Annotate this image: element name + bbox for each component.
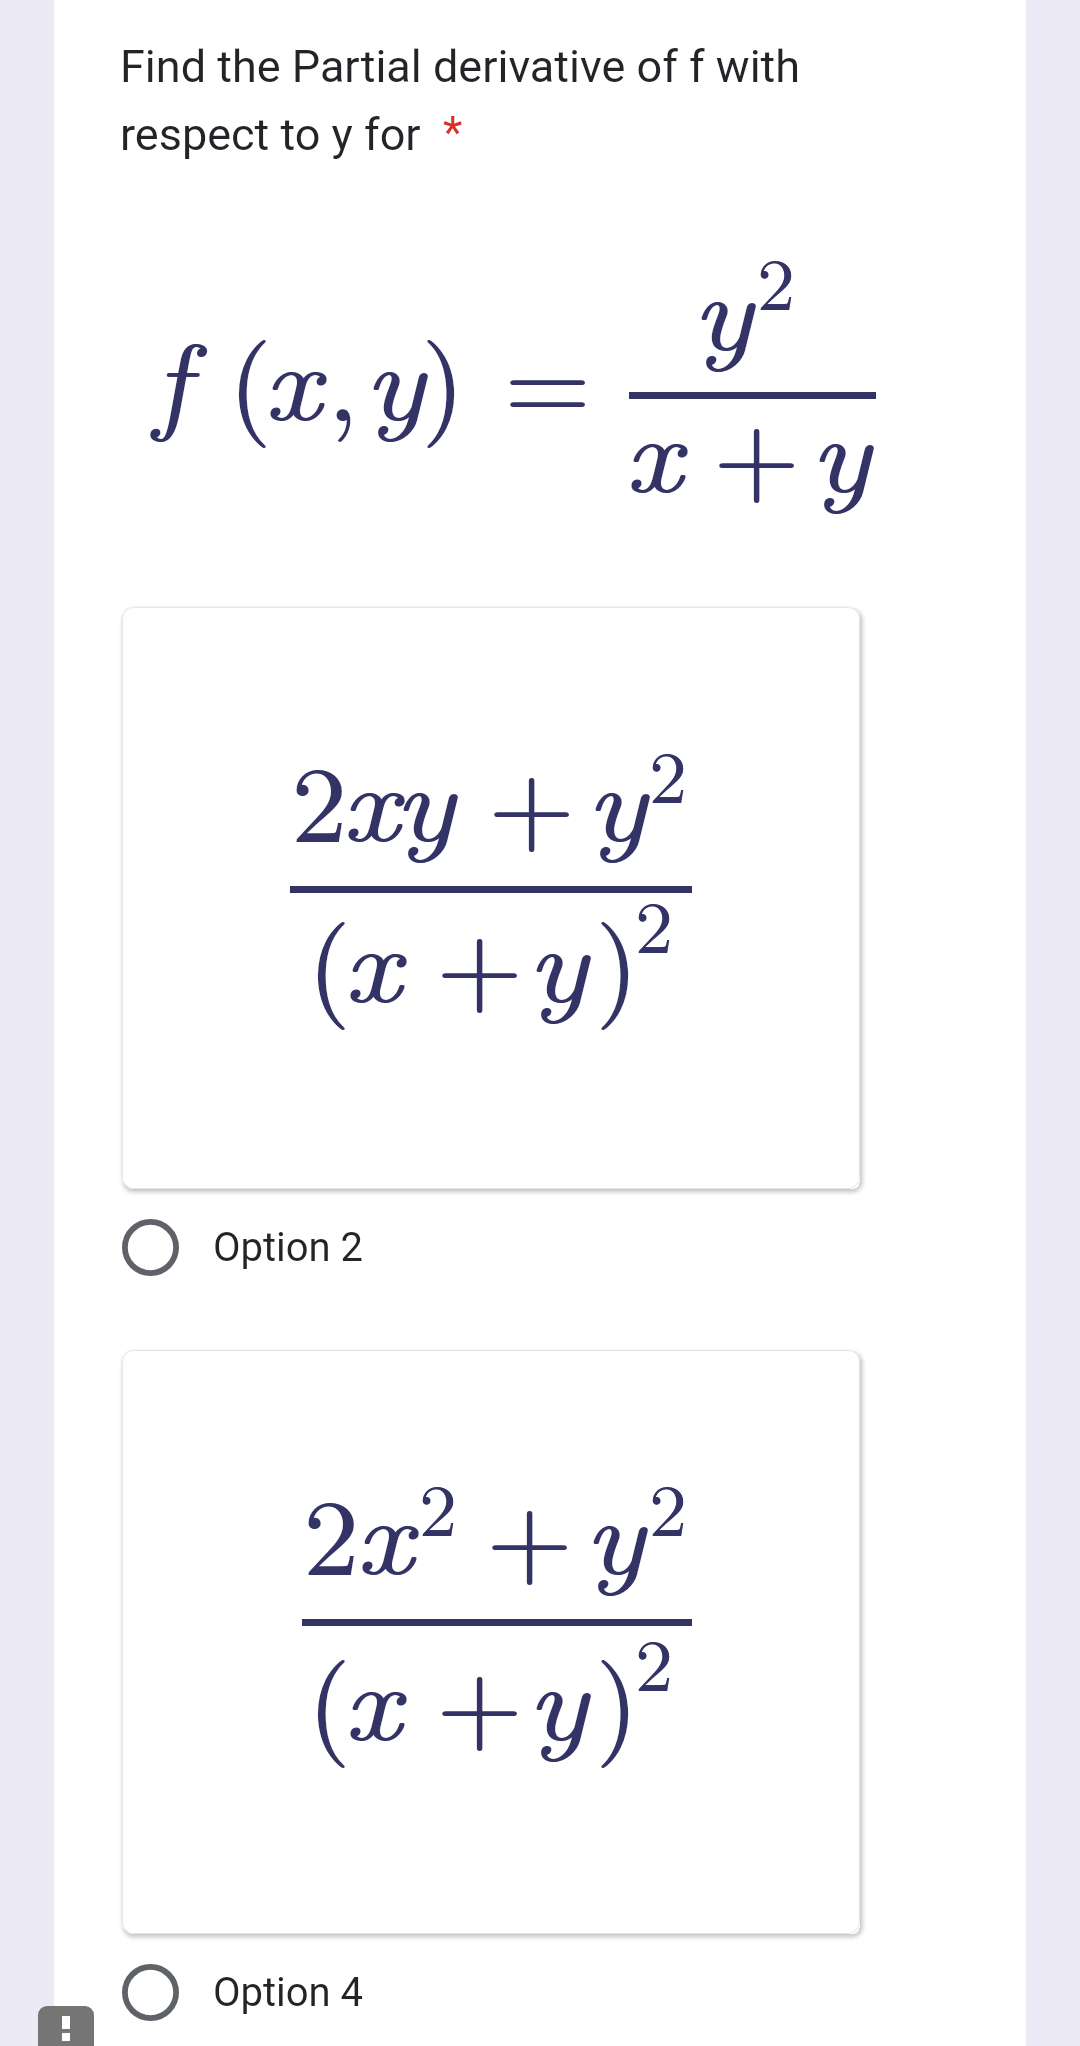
staticText: y [395, 720, 457, 873]
staticText: ) [421, 299, 465, 452]
staticText: x [342, 720, 401, 873]
staticText: ( [308, 1619, 352, 1772]
staticText: y [693, 229, 755, 382]
staticText: 2 [649, 720, 688, 825]
staticText: = [505, 299, 592, 452]
staticText: y [586, 720, 648, 873]
button[interactable]: Warning [38, 2006, 94, 2046]
staticText: + [713, 371, 800, 524]
staticText: Option 4 [213, 1969, 364, 2016]
staticText: x [344, 881, 403, 1034]
staticText: ( [307, 881, 351, 1034]
staticText: + [486, 1453, 573, 1606]
staticText: 2 [419, 1453, 458, 1558]
staticText: + [487, 1453, 574, 1606]
staticText: + [437, 1619, 524, 1772]
staticText: f [152, 299, 192, 452]
staticText: x [343, 1619, 402, 1772]
button[interactable] [122, 607, 860, 1189]
staticText: , [328, 299, 359, 452]
staticText: 2 [291, 720, 347, 873]
staticText: + [437, 881, 524, 1034]
staticText: * [443, 106, 463, 159]
staticText: + [436, 881, 523, 1034]
staticText: 2 [635, 870, 674, 975]
staticText: + [489, 720, 576, 873]
staticText: ( [229, 299, 273, 452]
staticText: 2 [757, 227, 796, 332]
staticText: y [528, 881, 590, 1034]
staticText: y [394, 720, 456, 873]
staticText: Find the Partial derivative of f with re… [120, 40, 820, 161]
staticText: y [811, 371, 873, 524]
staticText: ) [595, 1619, 639, 1772]
staticText: x [624, 371, 683, 524]
staticText: y [692, 229, 754, 382]
staticText: y [585, 1453, 647, 1606]
staticText: + [714, 371, 801, 524]
staticText: y [584, 1453, 646, 1606]
staticText: ) [595, 881, 639, 1034]
staticText: ( [228, 299, 272, 452]
staticText: y [527, 881, 589, 1034]
staticText: y [587, 720, 649, 873]
staticText: 2 [304, 1453, 360, 1606]
staticText: y [364, 299, 426, 452]
staticText: f [153, 299, 193, 452]
staticText: Option 2 [213, 1224, 364, 1271]
staticText: ( [307, 1619, 351, 1772]
staticText: x [341, 720, 400, 873]
staticText: ) [422, 299, 466, 452]
staticText: ) [596, 1619, 640, 1772]
staticText: y [365, 299, 427, 452]
staticText: x [343, 881, 402, 1034]
staticText: 2 [419, 1453, 458, 1558]
staticText: 2 [635, 1608, 674, 1713]
staticText: 2 [649, 1453, 688, 1558]
staticText: y [810, 371, 872, 524]
staticText: 2 [635, 870, 674, 975]
staticText: 2 [303, 1453, 359, 1606]
staticText: 2 [649, 1453, 688, 1558]
staticText: y [527, 1619, 589, 1772]
button[interactable]: Option 2 [122, 1197, 882, 1298]
staticText: 2 [757, 227, 796, 332]
staticText: x [355, 1453, 414, 1606]
staticText: x [356, 1453, 415, 1606]
staticText: + [436, 1619, 523, 1772]
staticText: 2 [292, 720, 348, 873]
button[interactable]: Option 4 [122, 1942, 882, 2043]
staticText: x [264, 299, 323, 452]
staticText: + [488, 720, 575, 873]
staticText: ) [596, 881, 640, 1034]
staticText: y [528, 1619, 590, 1772]
staticText: x [344, 1619, 403, 1772]
button[interactable] [122, 1350, 860, 1934]
staticText: x [625, 371, 684, 524]
staticText: 2 [649, 720, 688, 825]
staticText: ( [308, 881, 352, 1034]
staticText: = [504, 299, 591, 452]
staticText: 2 [635, 1608, 674, 1713]
staticText: x [263, 299, 322, 452]
staticText: , [327, 299, 358, 452]
